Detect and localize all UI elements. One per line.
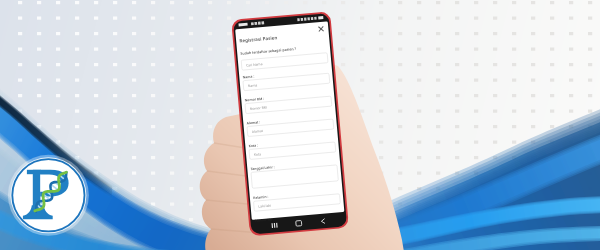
- button[interactable]: [0, 0, 600, 250]
